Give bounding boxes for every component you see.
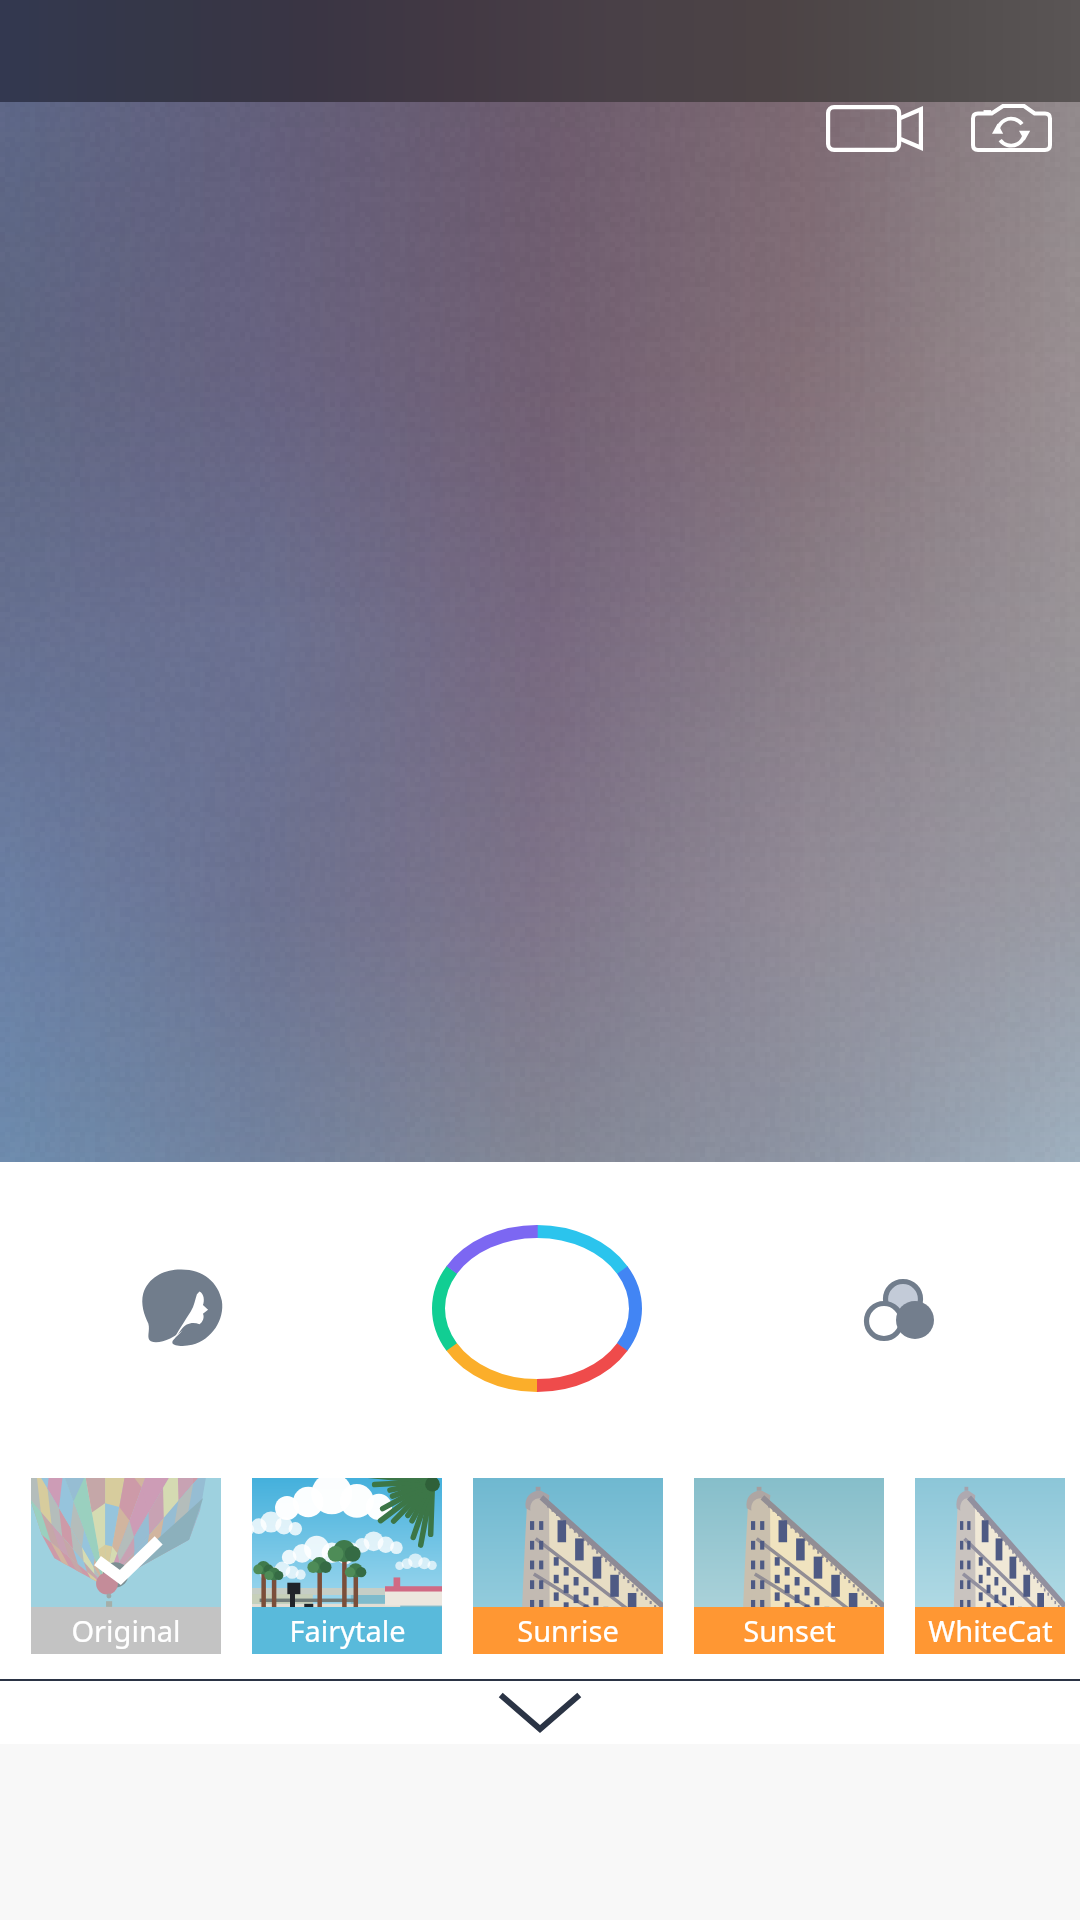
- button[interactable]: Sunset: [694, 1478, 884, 1654]
- staticText: WhiteCat: [928, 1611, 1053, 1650]
- button[interactable]: Switch camera: [958, 102, 1064, 153]
- staticText: Sunrise: [517, 1611, 619, 1650]
- staticText: Sunset: [743, 1611, 836, 1650]
- button[interactable]: Filters: [833, 1240, 973, 1380]
- staticText: Original: [71, 1611, 181, 1650]
- button[interactable]: Fairytale: [252, 1478, 442, 1654]
- button[interactable]: Sunrise: [473, 1478, 663, 1654]
- button[interactable]: WhiteCat: [915, 1478, 1065, 1654]
- button[interactable]: Beauty filter: [111, 1237, 251, 1377]
- button[interactable]: Collapse filters: [0, 1681, 1080, 1744]
- button[interactable]: Take photo: [407, 1198, 667, 1418]
- button[interactable]: Original: [31, 1478, 221, 1654]
- button[interactable]: Video mode: [814, 102, 935, 154]
- staticText: Fairytale: [289, 1611, 406, 1650]
